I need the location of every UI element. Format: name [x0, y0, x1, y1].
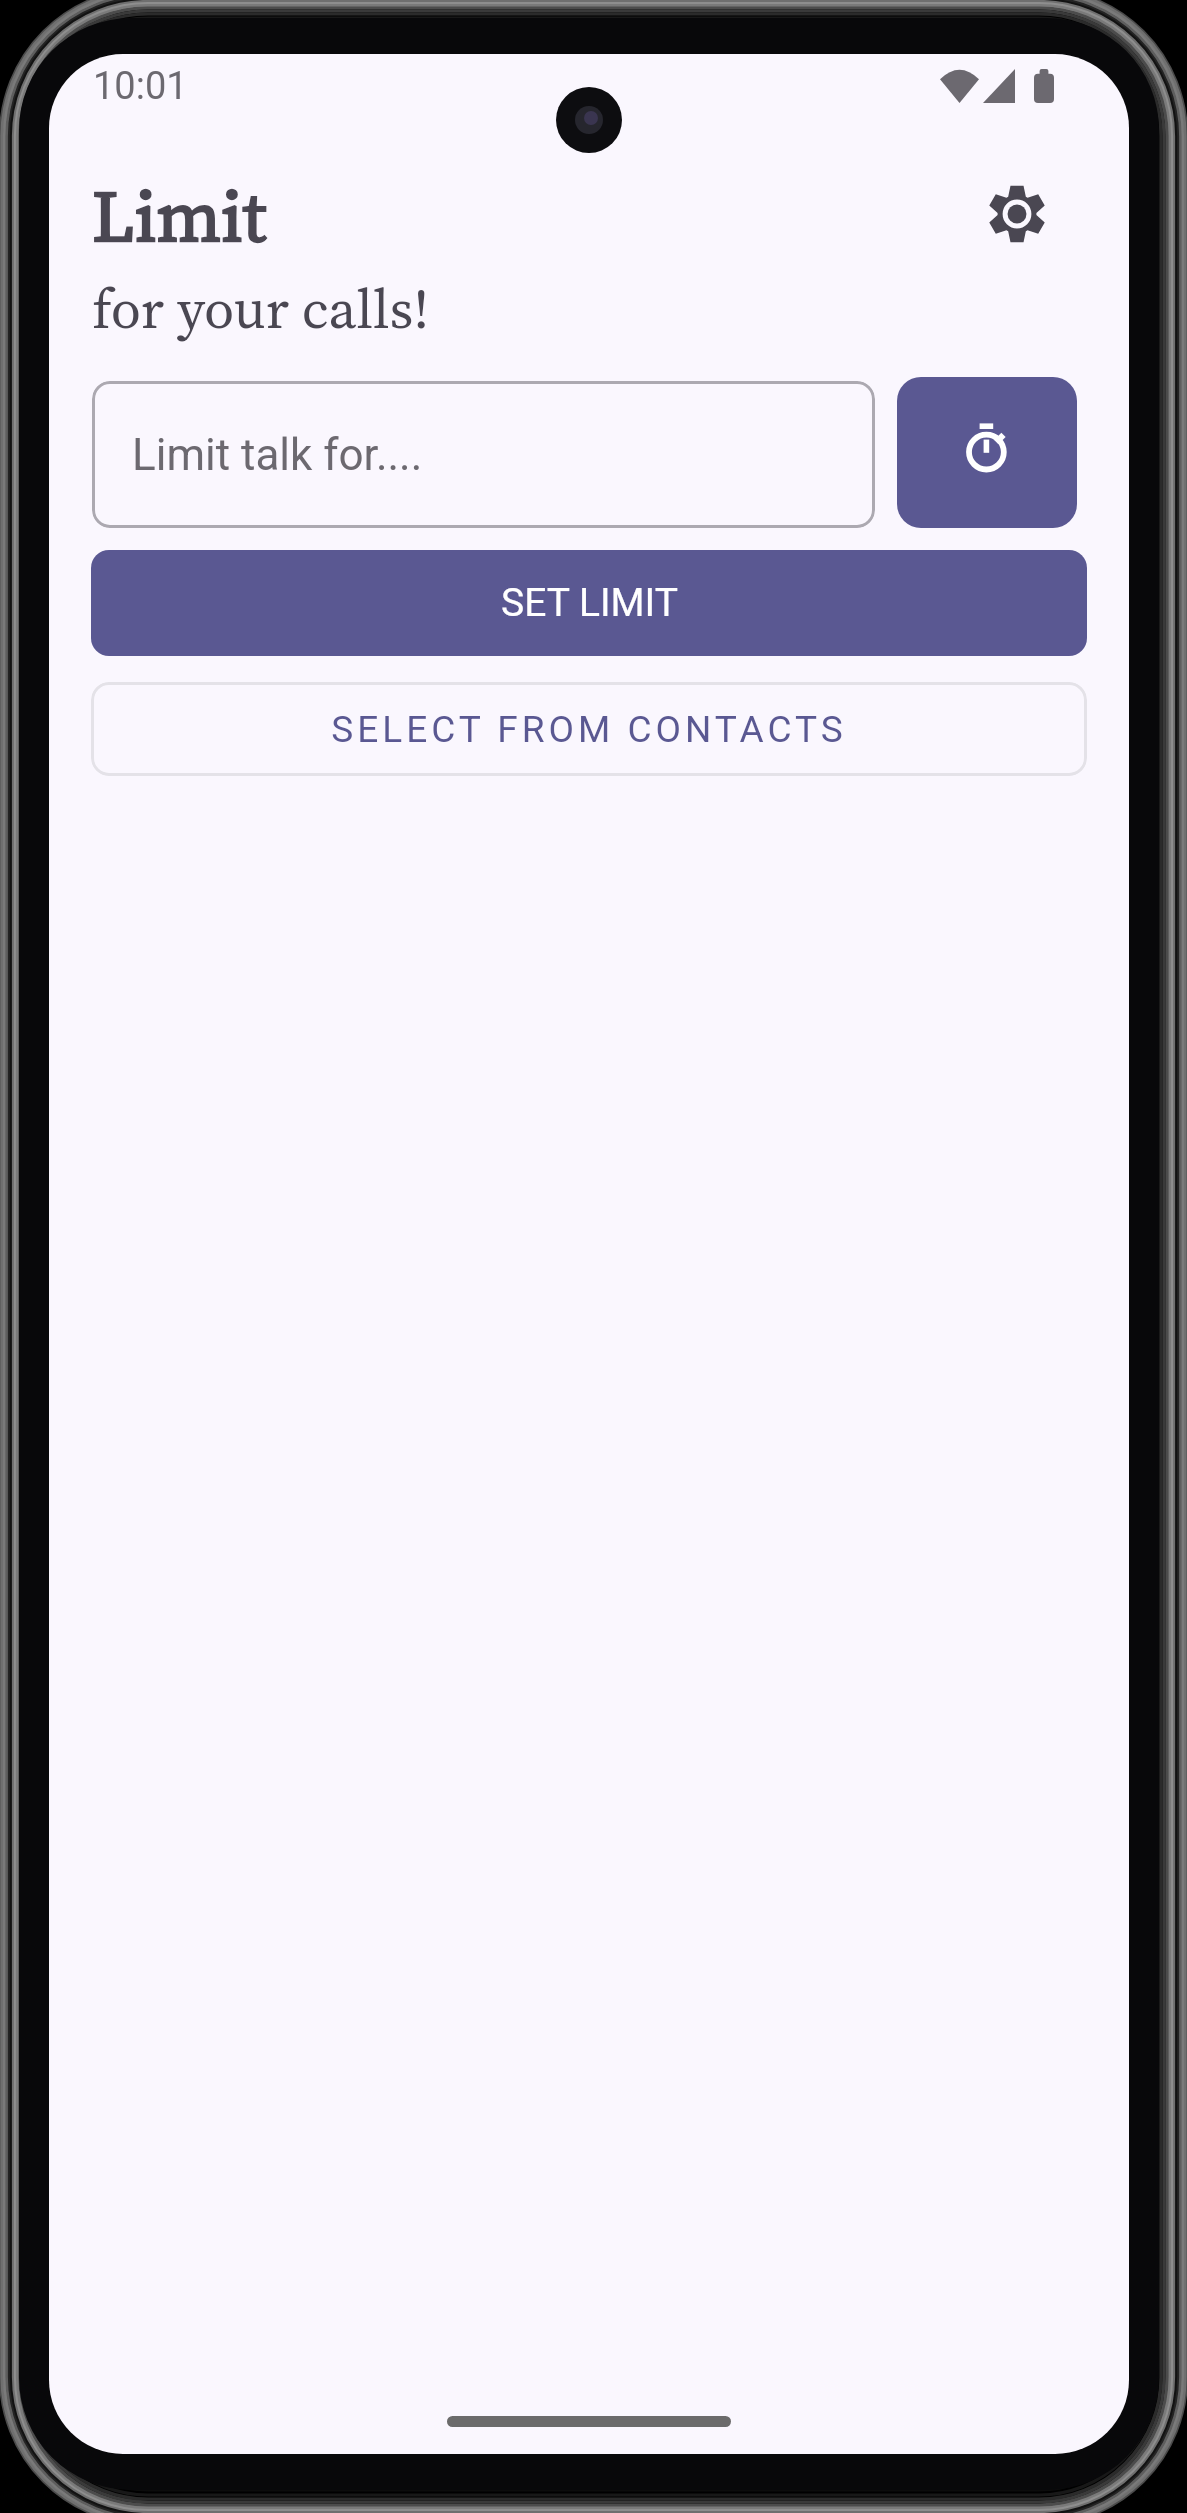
button[interactable]: Settings [967, 164, 1067, 264]
staticText: SET LIMIT [501, 580, 678, 626]
staticText: 10:01 [93, 64, 188, 109]
button[interactable]: SET LIMIT [91, 550, 1087, 656]
button[interactable]: Limit talk for.... [92, 381, 875, 528]
button[interactable]: SELECT FROM CONTACTS [91, 682, 1087, 776]
staticText: Limit [92, 166, 267, 265]
staticText: Limit talk for.... [132, 429, 423, 481]
staticText: SELECT FROM CONTACTS [331, 708, 847, 751]
button[interactable]: Start timer [897, 377, 1077, 528]
staticText: for your calls! [92, 271, 430, 346]
